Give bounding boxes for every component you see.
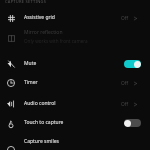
- staticText: Assistive grid: [24, 14, 55, 21]
- staticText: Touch to capture: [24, 119, 64, 126]
- staticText: Off: [121, 80, 129, 87]
- staticText: Capture smiles: [24, 138, 59, 145]
- staticText: Timer: [24, 79, 38, 86]
- button[interactable]: Mirror reflection: [0, 23, 150, 52]
- staticText: Mute: [24, 60, 37, 67]
- button[interactable]: Capture smiles: [0, 132, 150, 150]
- staticText: CAPTURE SETTINGS: [5, 0, 47, 4]
- button[interactable]: Audio control: [0, 94, 150, 114]
- button[interactable]: Assistive grid: [0, 8, 150, 28]
- button[interactable]: Enabled: [124, 60, 141, 68]
- button[interactable]: Timer: [0, 73, 150, 93]
- staticText: Off: [121, 101, 129, 108]
- staticText: Off: [121, 15, 129, 22]
- button[interactable]: Touch to capture: [0, 113, 150, 133]
- staticText: Only works with front camera: [24, 38, 88, 44]
- staticText: Audio control: [24, 100, 56, 107]
- staticText: Mirror reflection: [24, 29, 63, 36]
- button[interactable]: Mute: [0, 54, 150, 74]
- button[interactable]: Disabled: [124, 119, 141, 127]
